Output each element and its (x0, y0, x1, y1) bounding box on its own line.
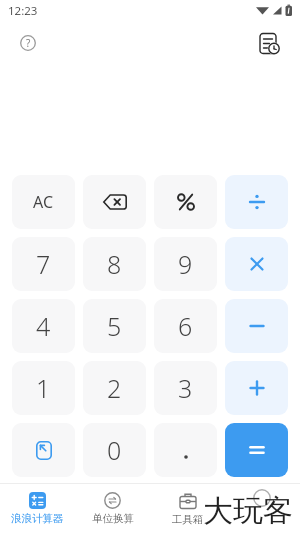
button[interactable]: 1 (12, 361, 75, 415)
button[interactable]: 7 (12, 237, 75, 291)
staticText: 浪浪计算器 (11, 512, 64, 525)
staticText: 1 (36, 371, 51, 405)
button[interactable] (225, 361, 288, 415)
staticText: ? (26, 36, 31, 50)
staticText: 大玩客 (203, 492, 293, 530)
button[interactable] (225, 237, 288, 291)
staticText: 9 (178, 247, 193, 281)
staticText: AC (33, 191, 54, 213)
button[interactable] (154, 175, 217, 229)
staticText: 2 (107, 371, 122, 405)
button[interactable]: 工具箱 (150, 484, 225, 533)
staticText: 12:23 (8, 3, 38, 19)
button[interactable]: AC (12, 175, 75, 229)
button[interactable] (83, 175, 146, 229)
staticText: 单位换算 (92, 512, 134, 525)
button[interactable] (225, 299, 288, 353)
staticText: 4 (36, 309, 51, 343)
button[interactable] (225, 423, 288, 477)
button[interactable] (225, 175, 288, 229)
button[interactable]: ? (20, 35, 36, 51)
staticText: 7 (36, 247, 51, 281)
button[interactable]: 0 (83, 423, 146, 477)
staticText: 工具箱 (172, 513, 204, 526)
button[interactable]: 单位换算 (75, 484, 150, 533)
staticText: 8 (107, 247, 122, 281)
staticText: 5 (107, 309, 122, 343)
button[interactable]: 5 (83, 299, 146, 353)
button[interactable] (225, 484, 300, 533)
button[interactable] (12, 423, 75, 477)
button[interactable]: 6 (154, 299, 217, 353)
button[interactable]: 浪浪计算器 (0, 484, 75, 533)
button[interactable] (154, 423, 217, 477)
button[interactable]: 3 (154, 361, 217, 415)
staticText: 3 (178, 371, 193, 405)
button[interactable] (259, 33, 281, 55)
button[interactable]: 4 (12, 299, 75, 353)
button[interactable]: 9 (154, 237, 217, 291)
button[interactable]: 2 (83, 361, 146, 415)
staticText: 6 (178, 309, 193, 343)
staticText: 0 (107, 433, 122, 467)
button[interactable]: 8 (83, 237, 146, 291)
